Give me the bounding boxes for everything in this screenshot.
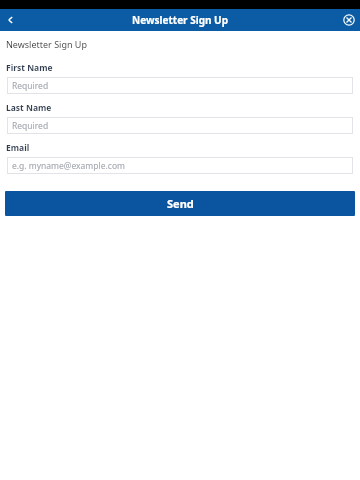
button[interactable]: Close (338, 9, 360, 31)
button[interactable]: e.g. myname@example.com (7, 157, 353, 174)
button[interactable]: Back (0, 9, 22, 31)
button[interactable]: Required (7, 117, 353, 134)
staticText: Newsletter Sign Up (6, 38, 87, 50)
staticText: Email (6, 142, 30, 154)
staticText: Send (167, 196, 194, 211)
staticText: Required (12, 120, 49, 132)
staticText: Newsletter Sign Up (132, 13, 228, 27)
button[interactable]: Required (7, 77, 353, 94)
button[interactable]: Send (5, 191, 355, 216)
staticText: Last Name (6, 102, 52, 114)
staticText: First Name (6, 62, 53, 74)
staticText: e.g. myname@example.com (12, 160, 125, 172)
staticText: Required (12, 80, 49, 92)
